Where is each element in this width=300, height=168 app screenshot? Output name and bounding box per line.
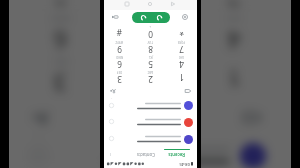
staticText: 3 (117, 74, 122, 85)
staticText: 6 (117, 59, 122, 70)
button[interactable]: 1 (166, 70, 197, 85)
button[interactable]: Call details (108, 135, 116, 143)
button[interactable]: Video call (111, 13, 120, 22)
button[interactable]: 4 (191, 14, 277, 57)
staticText: ABC (139, 57, 155, 67)
button[interactable]: Recents (162, 150, 192, 160)
staticText: MNO (115, 55, 123, 59)
staticText: * (179, 27, 184, 38)
staticText: JKL (141, 14, 154, 24)
button[interactable]: Call details (108, 118, 116, 126)
staticText: 08:45 (179, 161, 190, 167)
button[interactable]: Add contact (30, 107, 52, 129)
staticText: 1 (179, 72, 184, 83)
staticText: WXYZ (115, 40, 123, 44)
button[interactable]: 3 (17, 57, 104, 100)
staticText: 3 (53, 67, 67, 99)
button[interactable]: 5 (104, 14, 191, 57)
staticText: 8 (148, 44, 153, 55)
button[interactable]: 9 (17, 0, 104, 14)
staticText: 0 (148, 29, 153, 40)
button[interactable]: 1 (191, 57, 277, 100)
button[interactable]: 5 (135, 55, 166, 70)
staticText: 9 (117, 44, 122, 55)
button[interactable]: Call details (17, 136, 277, 168)
button[interactable]: Call (132, 12, 170, 23)
staticText: 1 (227, 62, 241, 94)
staticText: JKL (148, 55, 153, 59)
button[interactable]: Call details (108, 102, 116, 110)
staticText: # (116, 27, 122, 38)
button[interactable]: 8 (104, 0, 191, 14)
button[interactable]: 4 (166, 55, 197, 70)
button[interactable]: Backspace (242, 107, 264, 129)
button[interactable]: * (166, 25, 197, 40)
staticText: Contacts (137, 152, 155, 158)
staticText: 5 (148, 59, 153, 70)
staticText: 2 (140, 67, 154, 99)
staticText: ABC (147, 70, 153, 74)
button[interactable]: Contacts (130, 150, 162, 160)
staticText: 7 (179, 44, 184, 55)
button[interactable]: 8 (135, 40, 166, 55)
staticText: 5 (140, 24, 154, 56)
button[interactable]: Dial pad options (181, 13, 190, 22)
staticText: 4 (179, 59, 184, 70)
button[interactable]: 7 (191, 0, 277, 14)
staticText: TUV (147, 40, 153, 44)
button[interactable]: 7 (166, 40, 197, 55)
button[interactable]: Call details (104, 98, 197, 114)
button[interactable]: Home (146, 0, 155, 9)
staticText: PQRS (177, 40, 185, 44)
button[interactable]: 3 (104, 70, 135, 85)
button[interactable]: Call details (104, 114, 197, 131)
button[interactable]: Recent apps (123, 0, 132, 9)
staticText: DEF (116, 70, 122, 74)
staticText: Recents (168, 152, 185, 158)
button[interactable]: 0 (135, 25, 166, 40)
button[interactable]: 6 (104, 55, 135, 70)
button[interactable]: Add contact (109, 87, 117, 95)
staticText: 6 (53, 24, 67, 56)
staticText: GHI (178, 55, 184, 59)
button[interactable]: Back (169, 0, 178, 9)
button[interactable]: 2 (135, 70, 166, 85)
staticText: 8 (140, 0, 154, 13)
button[interactable]: 9 (104, 40, 135, 55)
button[interactable]: 2 (104, 57, 191, 100)
button[interactable]: More options (106, 150, 115, 159)
staticText: + (149, 25, 151, 29)
staticText: 2 (148, 74, 153, 85)
button[interactable]: 6 (17, 14, 104, 57)
button[interactable]: Call details (104, 131, 197, 148)
button[interactable]: Backspace (184, 87, 192, 95)
staticText: 4 (227, 24, 241, 56)
button[interactable]: # (104, 25, 135, 40)
